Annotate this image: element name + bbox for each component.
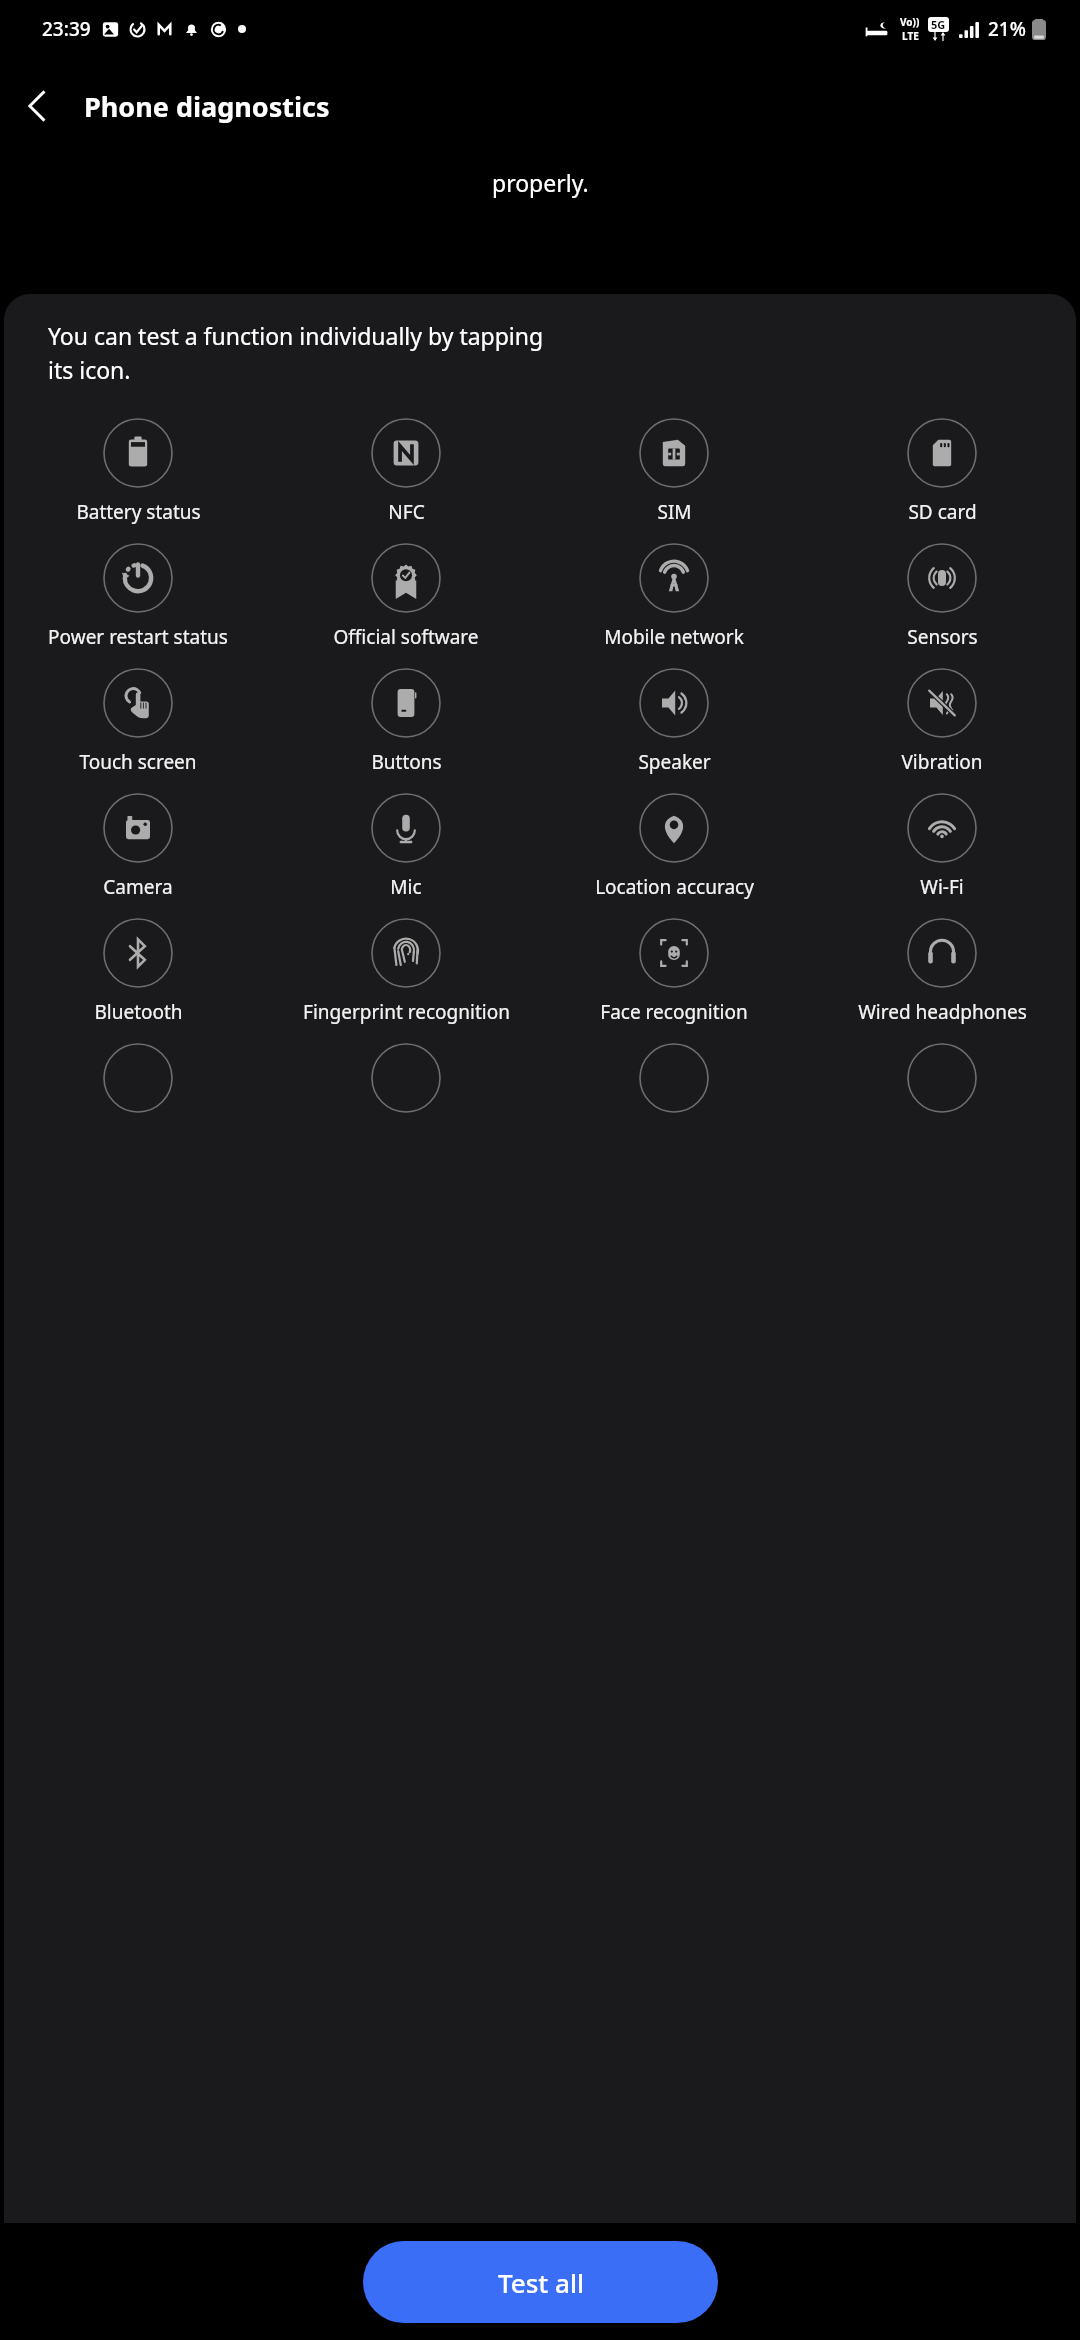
- button[interactable]: [272, 1033, 540, 1124]
- staticText: SD card: [908, 499, 977, 525]
- button[interactable]: Bluetooth: [4, 908, 272, 1025]
- staticText: 21%: [988, 16, 1026, 42]
- button[interactable]: Fingerprint recognition: [272, 908, 540, 1025]
- button[interactable]: Wired headphones: [808, 908, 1076, 1025]
- staticText: 23:39: [42, 16, 91, 42]
- button[interactable]: Mobile network: [540, 533, 808, 650]
- staticText: SIM: [657, 499, 692, 525]
- button[interactable]: Buttons: [272, 658, 540, 775]
- staticText: You can test a function individually by …: [48, 320, 544, 386]
- button[interactable]: Camera: [4, 783, 272, 900]
- button[interactable]: [540, 1033, 808, 1124]
- staticText: Mic: [390, 874, 422, 900]
- staticText: Touch screen: [79, 749, 197, 775]
- button[interactable]: SIM: [540, 408, 808, 525]
- button[interactable]: [4, 1033, 272, 1124]
- button[interactable]: SD card: [808, 408, 1076, 525]
- staticText: 5G: [931, 17, 946, 32]
- staticText: Vibration: [901, 749, 983, 775]
- staticText: properly.: [492, 167, 589, 198]
- button[interactable]: Speaker: [540, 658, 808, 775]
- button[interactable]: Test all: [363, 2241, 718, 2323]
- staticText: Power restart status: [48, 624, 228, 650]
- button[interactable]: NFC: [272, 408, 540, 525]
- button[interactable]: Official software: [272, 533, 540, 650]
- staticText: Bluetooth: [94, 999, 183, 1025]
- staticText: Face recognition: [600, 999, 748, 1025]
- staticText: Wi-Fi: [920, 874, 964, 900]
- staticText: LTE: [902, 29, 919, 43]
- staticText: Buttons: [371, 749, 442, 775]
- button[interactable]: Mic: [272, 783, 540, 900]
- staticText: Battery status: [76, 499, 201, 525]
- staticText: Mobile network: [604, 624, 744, 650]
- staticText: Test all: [498, 2265, 584, 2300]
- staticText: Wired headphones: [858, 999, 1027, 1025]
- staticText: Speaker: [638, 749, 711, 775]
- button[interactable]: Power restart status: [4, 533, 272, 650]
- button[interactable]: Back: [0, 68, 76, 144]
- button[interactable]: [808, 1033, 1076, 1124]
- staticText: Camera: [103, 874, 173, 900]
- button[interactable]: Battery status: [4, 408, 272, 525]
- staticText: NFC: [388, 499, 425, 525]
- button[interactable]: Vibration: [808, 658, 1076, 775]
- staticText: Vo)): [900, 15, 920, 29]
- staticText: Sensors: [907, 624, 978, 650]
- button[interactable]: Wi-Fi: [808, 783, 1076, 900]
- staticText: Phone diagnostics: [84, 88, 330, 125]
- staticText: Official software: [333, 624, 479, 650]
- button[interactable]: Touch screen: [4, 658, 272, 775]
- button[interactable]: Sensors: [808, 533, 1076, 650]
- staticText: Fingerprint recognition: [303, 999, 510, 1025]
- button[interactable]: Face recognition: [540, 908, 808, 1025]
- staticText: Location accuracy: [595, 874, 754, 900]
- button[interactable]: Location accuracy: [540, 783, 808, 900]
